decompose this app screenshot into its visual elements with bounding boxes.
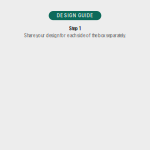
button[interactable]: DESIGN GUIDE — [49, 11, 101, 20]
staticText: Step 1 — [69, 26, 81, 31]
staticText: DESIGN GUIDE — [57, 13, 93, 18]
staticText: Share your design for each side of the b… — [24, 33, 126, 38]
